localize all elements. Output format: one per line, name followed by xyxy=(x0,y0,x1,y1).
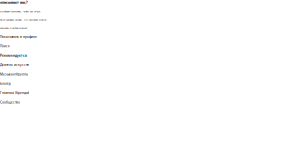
staticText: описывает вас? xyxy=(0,0,28,5)
staticText: было находить людям. Эту настройку можно xyxy=(0,18,46,21)
staticText: Рекомендуется xyxy=(0,53,27,58)
staticText: изменить в любой момент. xyxy=(0,26,28,30)
staticText: Выберите категорию, чтобы вас лучше xyxy=(0,10,40,13)
staticText: Сообщество xyxy=(0,100,20,104)
staticText: Поиск xyxy=(0,44,10,48)
staticText: Музыкант/группа xyxy=(0,72,28,76)
staticText: Главная (бренды) xyxy=(0,91,29,95)
staticText: Деятель искусств xyxy=(0,63,29,67)
staticText: Блогер xyxy=(0,81,11,86)
staticText: Показывать в профиле xyxy=(0,34,37,39)
